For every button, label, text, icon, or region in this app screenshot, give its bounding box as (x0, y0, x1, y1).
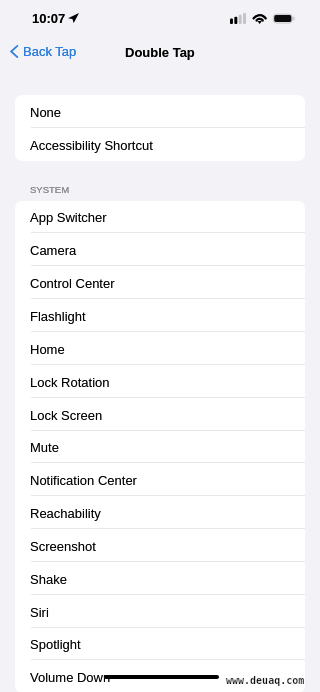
button[interactable]: None (15, 95, 305, 128)
staticText: Mute (30, 440, 59, 455)
staticText: Home (30, 342, 65, 357)
staticText: Volume Down (30, 670, 111, 685)
staticText: Camera (30, 243, 77, 258)
staticText: Shake (30, 572, 67, 587)
staticText: Camera (30, 243, 77, 258)
button[interactable]: Notification Center (15, 463, 305, 496)
staticText: None (30, 105, 62, 120)
button[interactable]: Reachability (15, 496, 305, 529)
staticText: Back Tap (23, 44, 77, 59)
staticText: Lock Screen (30, 408, 103, 423)
button[interactable]: App Switcher (15, 201, 305, 233)
staticText: Double Tap (125, 45, 195, 60)
staticText: Lock Screen (30, 408, 103, 423)
staticText: Screenshot (30, 539, 96, 554)
staticText: App Switcher (30, 210, 107, 225)
staticText: Control Center (30, 276, 115, 291)
staticText: Screenshot (30, 539, 96, 554)
staticText: Double Tap (125, 45, 195, 60)
staticText: Shake (30, 572, 67, 587)
staticText: Control Center (30, 276, 115, 291)
button[interactable]: Siri (15, 595, 305, 628)
staticText: Accessibility Shortcut (30, 138, 153, 153)
staticText: 10:07 (32, 11, 66, 26)
staticText: Lock Rotation (30, 375, 110, 390)
staticText: 10:07 (32, 11, 66, 26)
button[interactable]: Lock Screen (15, 398, 305, 431)
button[interactable]: Back (0, 37, 87, 66)
staticText: SYSTEM (30, 184, 70, 195)
button[interactable]: Lock Rotation (15, 365, 305, 398)
staticText: www.deuaq.com (226, 675, 305, 687)
staticText: None (30, 105, 62, 120)
staticText: Back Tap (23, 44, 77, 59)
staticText: Flashlight (30, 309, 86, 324)
button[interactable]: Screenshot (15, 529, 305, 562)
staticText: Reachability (30, 506, 101, 521)
staticText: Accessibility Shortcut (30, 138, 153, 153)
staticText: Siri (30, 605, 49, 620)
button[interactable]: Spotlight (15, 628, 305, 660)
staticText: Lock Rotation (30, 375, 110, 390)
button[interactable]: Accessibility Shortcut (15, 128, 305, 161)
button[interactable]: Control Center (15, 266, 305, 299)
staticText: Flashlight (30, 309, 86, 324)
staticText: Spotlight (30, 637, 81, 652)
button[interactable]: Volume Down (15, 660, 305, 692)
staticText: Spotlight (30, 637, 81, 652)
other: Back (10, 45, 18, 58)
button[interactable]: Home (15, 332, 305, 365)
button[interactable]: Flashlight (15, 299, 305, 332)
staticText: Siri (30, 605, 49, 620)
staticText: SYSTEM (30, 184, 70, 195)
button[interactable]: Mute (15, 431, 305, 463)
button[interactable]: Camera (15, 233, 305, 266)
staticText: Home (30, 342, 65, 357)
button[interactable]: Shake (15, 562, 305, 595)
staticText: Notification Center (30, 473, 137, 488)
staticText: Notification Center (30, 473, 137, 488)
staticText: App Switcher (30, 210, 107, 225)
staticText: Volume Down (30, 670, 111, 685)
staticText: Reachability (30, 506, 101, 521)
staticText: Mute (30, 440, 59, 455)
